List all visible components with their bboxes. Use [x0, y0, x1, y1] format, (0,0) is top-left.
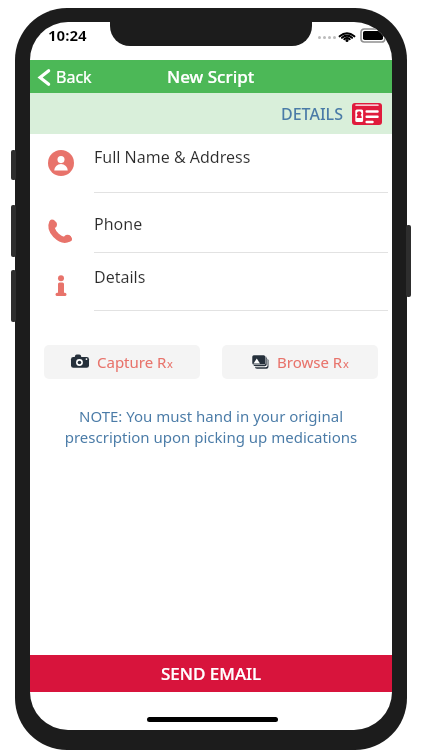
staticText: Details [94, 266, 146, 288]
other: Details [48, 273, 74, 299]
staticText: Full Name & Address [94, 146, 251, 168]
other: Phone [48, 218, 74, 244]
staticText: New Script [167, 65, 255, 88]
button[interactable]: Capture prescription [44, 345, 200, 379]
staticText: x [343, 356, 349, 371]
staticText: Back [56, 66, 92, 88]
other: Name [48, 150, 74, 176]
button[interactable]: Back [30, 62, 102, 92]
staticText: 10:24 [48, 25, 87, 45]
staticText: Capture R [97, 352, 167, 372]
staticText: Phone [94, 213, 143, 235]
button[interactable]: Name [30, 134, 392, 194]
staticText: DETAILS [281, 103, 343, 125]
staticText: SEND EMAIL [161, 662, 262, 685]
button[interactable]: DETAILS [271, 99, 392, 129]
staticText: NOTE: You must hand in your original pre… [44, 406, 378, 448]
staticText: Browse R [277, 352, 343, 372]
button[interactable]: Browse prescriptions [222, 345, 378, 379]
other: Browse prescriptions [251, 353, 269, 371]
staticText: x [167, 356, 173, 371]
button[interactable]: SEND EMAIL [30, 655, 392, 692]
button[interactable]: Phone [30, 202, 392, 254]
other: Capture prescription [71, 353, 89, 371]
button[interactable]: Details [30, 257, 392, 311]
